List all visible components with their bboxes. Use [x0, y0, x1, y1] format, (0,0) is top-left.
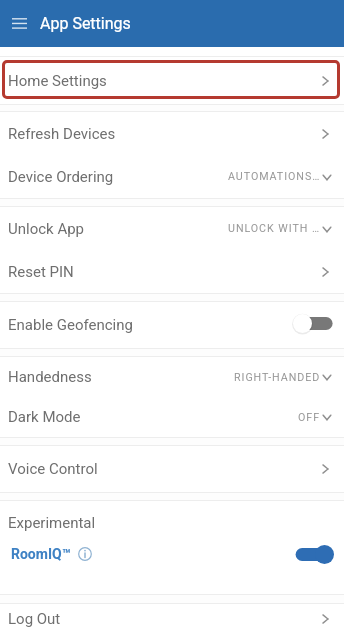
staticText: UNLOCK WITH … [228, 222, 321, 235]
button[interactable]: Toggle on [291, 545, 334, 564]
staticText: OFF [298, 411, 321, 424]
staticText: App Settings [40, 14, 131, 33]
button[interactable]: Home Settings [0, 57, 344, 104]
button[interactable]: Refresh Devices [0, 112, 344, 155]
button[interactable]: Log Out [0, 604, 344, 634]
staticText: Enable Geofencing [8, 316, 133, 334]
button[interactable]: Toggle off [293, 314, 336, 333]
staticText: Log Out [8, 610, 61, 628]
staticText: Reset PIN [8, 263, 74, 281]
staticText: Experimental [8, 514, 96, 532]
staticText: RIGHT-HANDED [234, 371, 321, 384]
staticText: Dark Mode [8, 408, 81, 426]
button[interactable]: RoomIQ™ [0, 530, 344, 578]
button[interactable]: Device Ordering [0, 155, 344, 198]
button[interactable]: Voice Control [0, 446, 344, 492]
button[interactable]: Unlock App [0, 207, 344, 250]
staticText: Device Ordering [8, 168, 114, 186]
staticText: Home Settings [8, 72, 107, 90]
staticText: Refresh Devices [8, 125, 116, 143]
staticText: AUTOMATIONS… [228, 170, 321, 183]
staticText: Handedness [8, 368, 92, 386]
staticText: Voice Control [8, 460, 98, 478]
button[interactable]: Reset PIN [0, 250, 344, 293]
button[interactable]: Dark Mode [0, 397, 344, 437]
staticText: RoomIQ™ [11, 546, 71, 562]
staticText: Unlock App [8, 220, 85, 238]
button[interactable]: Open navigation menu [4, 8, 35, 39]
button[interactable]: Enable Geofencing [0, 302, 344, 348]
button[interactable]: Handedness [0, 357, 344, 397]
